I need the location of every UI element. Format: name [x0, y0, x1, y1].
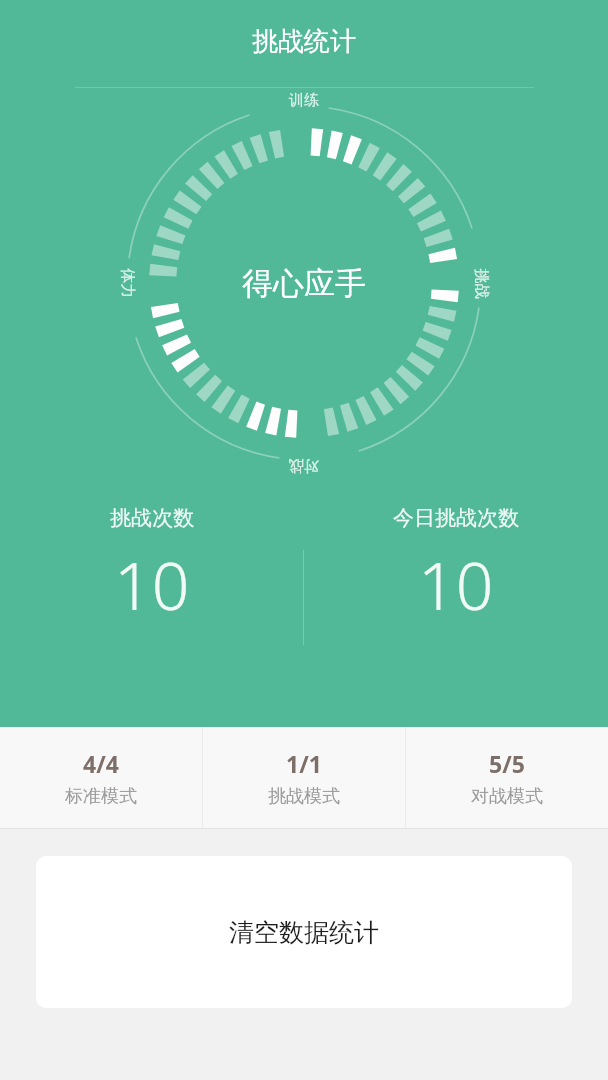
other: Challenge progress ring [114, 93, 494, 473]
button[interactable]: 清空数据统计 [36, 856, 572, 1008]
button[interactable]: 5/5 [406, 727, 608, 828]
staticText: 得心应手 [242, 264, 366, 303]
staticText: 5/5 [489, 748, 525, 779]
staticText: 10 [114, 539, 190, 629]
staticText: 训练 [289, 91, 319, 110]
staticText: 清空数据统计 [229, 917, 379, 948]
staticText: 今日挑战次数 [393, 505, 519, 531]
staticText: 4/4 [83, 748, 119, 779]
staticText: 10 [418, 539, 494, 629]
button[interactable]: 挑战次数 [0, 505, 303, 629]
staticText: 挑战次数 [110, 505, 194, 531]
staticText: 挑战统计 [252, 25, 356, 58]
staticText: 对战 [289, 456, 319, 475]
button[interactable]: 今日挑战次数 [304, 505, 608, 629]
button[interactable]: 1/1 [203, 727, 405, 828]
staticText: 体力 [117, 268, 136, 298]
staticText: 挑战模式 [268, 785, 340, 808]
button[interactable]: 4/4 [0, 727, 202, 828]
staticText: 1/1 [286, 748, 322, 779]
staticText: 标准模式 [65, 785, 137, 808]
staticText: 对战模式 [471, 785, 543, 808]
staticText: 挑战 [471, 268, 490, 298]
